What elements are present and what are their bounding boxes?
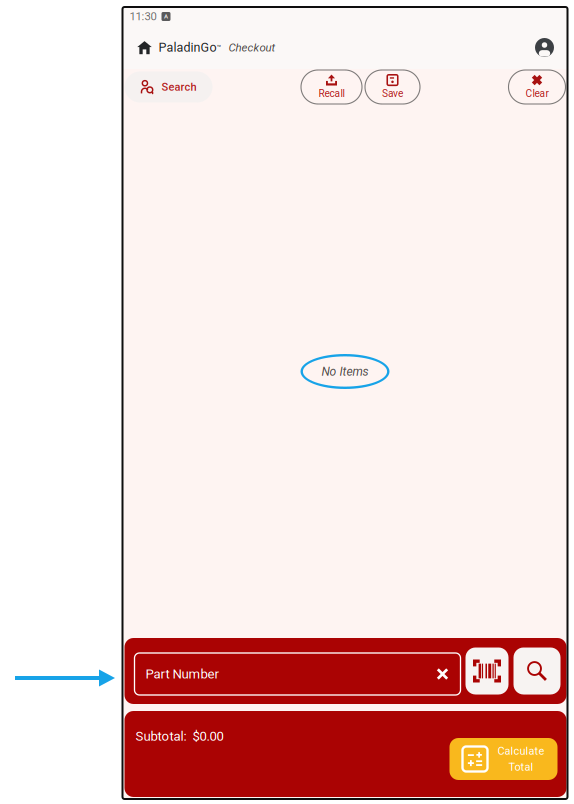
button[interactable]: Calculate [449,738,557,780]
button[interactable]: Scan barcode [465,647,508,694]
button[interactable]: Account [529,32,559,62]
staticText: Clear [525,88,548,99]
staticText: Total [508,760,533,773]
button[interactable]: Home [130,32,158,62]
button[interactable]: Search part number [513,647,560,694]
button[interactable]: Recall [301,70,362,104]
staticText: Save [382,88,403,99]
staticText: Search [161,80,196,93]
button[interactable]: Search [124,71,212,102]
staticText: Part Number [145,666,218,682]
staticText: ™ [216,43,221,52]
staticText: PaladinGo [158,40,216,55]
staticText: Checkout [228,41,275,54]
staticText: Calculate [497,745,544,757]
staticText: 11:30 [129,10,156,23]
staticText: A [164,13,168,20]
staticText: Recall [318,88,344,99]
button[interactable]: Clear part number [428,660,456,688]
staticText: Subtotal: $0.00 [135,728,223,744]
staticText: No Items [321,364,368,379]
button[interactable]: Save [365,70,420,104]
button[interactable]: Clear [508,70,565,104]
